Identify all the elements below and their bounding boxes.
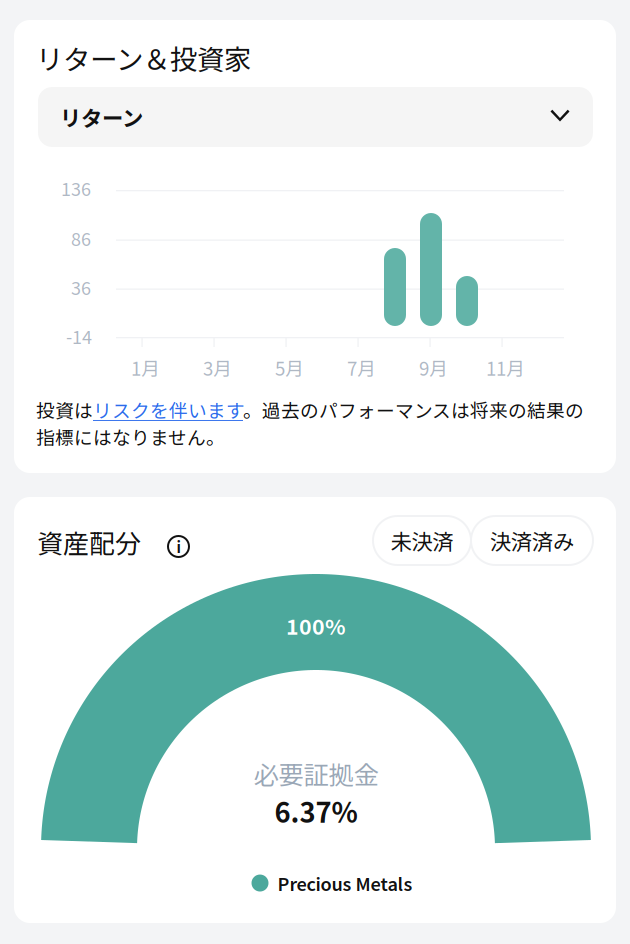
staticText: 6.37% xyxy=(274,791,357,831)
staticText: 投資はリスクを伴います。過去のパフォーマンスは将来の結果の指標にはなりません。 xyxy=(36,396,584,450)
staticText: i xyxy=(176,536,180,557)
staticText: 必要証拠金 xyxy=(253,755,378,792)
staticText: 100% xyxy=(286,610,346,641)
staticText: 5月 xyxy=(275,354,304,381)
staticText: 11月 xyxy=(486,354,525,381)
button[interactable]: リターン xyxy=(38,87,593,147)
button[interactable]: 決済済み xyxy=(471,516,593,565)
staticText: 36 xyxy=(71,274,91,300)
staticText: 136 xyxy=(61,175,91,201)
staticText: -14 xyxy=(66,323,92,349)
staticText: Precious Metals xyxy=(277,870,412,896)
staticText: 3月 xyxy=(203,354,232,381)
staticText: リターン＆投資家 xyxy=(36,38,251,78)
staticText: 86 xyxy=(71,225,91,251)
staticText: リターン xyxy=(60,102,143,132)
staticText: 未決済 xyxy=(390,525,453,556)
button[interactable]: 未決済 xyxy=(373,516,471,565)
staticText: 決済済み xyxy=(490,525,574,556)
staticText: 1月 xyxy=(131,354,160,381)
staticText: 資産配分 xyxy=(37,523,141,561)
staticText: 7月 xyxy=(347,354,376,381)
staticText: 9月 xyxy=(419,354,448,381)
